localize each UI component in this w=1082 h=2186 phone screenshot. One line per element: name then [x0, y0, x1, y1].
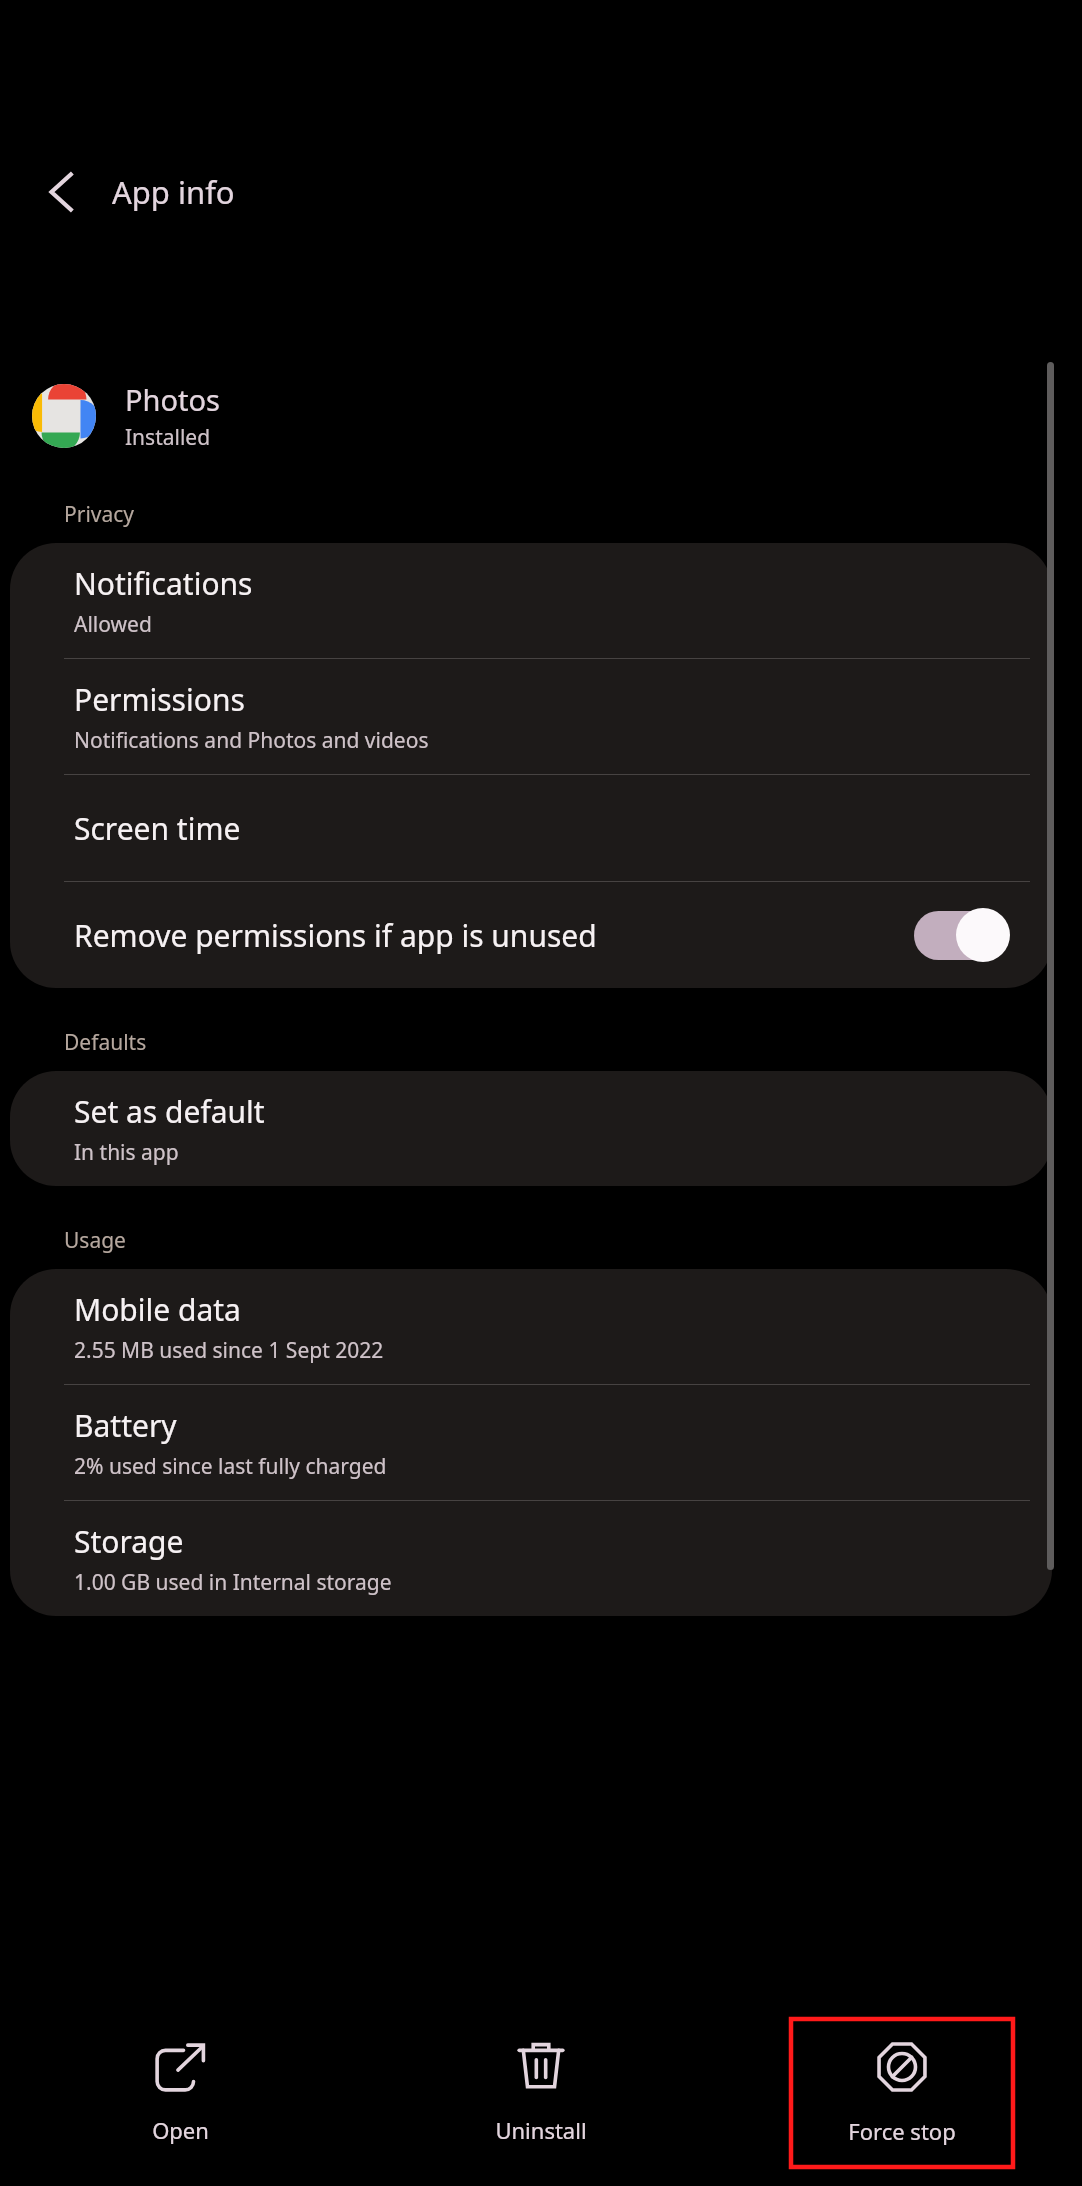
- staticText: Privacy: [64, 500, 135, 529]
- staticText: Mobile data: [74, 1289, 241, 1330]
- other: Open: [154, 2041, 206, 2093]
- staticText: Battery: [74, 1405, 177, 1446]
- button[interactable]: Set as default: [10, 1071, 1052, 1186]
- staticText: Force stop: [848, 2116, 956, 2146]
- staticText: Notifications: [74, 563, 253, 604]
- staticText: Open: [152, 2115, 209, 2145]
- staticText: Allowed: [74, 610, 152, 639]
- button[interactable]: Open: [69, 2019, 291, 2167]
- staticText: Set as default: [74, 1091, 265, 1132]
- button[interactable]: Remove permissions if app is unused: [10, 882, 1052, 988]
- button[interactable]: Battery: [10, 1385, 1052, 1500]
- staticText: In this app: [74, 1138, 179, 1167]
- staticText: Photos: [125, 380, 220, 419]
- staticText: Defaults: [64, 1028, 147, 1057]
- button[interactable]: Uninstall: [430, 2019, 652, 2167]
- staticText: Installed: [125, 423, 211, 452]
- other: Uninstall: [515, 2041, 567, 2093]
- button[interactable]: Back: [24, 154, 100, 230]
- other: Force stop: [875, 2040, 929, 2094]
- button[interactable]: Notifications: [10, 543, 1052, 658]
- staticText: Permissions: [74, 679, 245, 720]
- staticText: 1.00 GB used in Internal storage: [74, 1568, 392, 1597]
- staticText: Screen time: [74, 808, 241, 849]
- button[interactable]: Remove permissions toggle: [914, 908, 1010, 962]
- staticText: 2.55 MB used since 1 Sept 2022: [74, 1336, 384, 1365]
- staticText: 2% used since last fully charged: [74, 1452, 387, 1481]
- button[interactable]: Force stop: [791, 2019, 1013, 2167]
- staticText: Remove permissions if app is unused: [74, 915, 597, 956]
- staticText: Notifications and Photos and videos: [74, 726, 429, 755]
- button[interactable]: Permissions: [10, 659, 1052, 774]
- button[interactable]: Storage: [10, 1501, 1052, 1616]
- staticText: Uninstall: [495, 2115, 587, 2145]
- staticText: Usage: [64, 1226, 126, 1255]
- button[interactable]: Mobile data: [10, 1269, 1052, 1384]
- button[interactable]: Screen time: [10, 775, 1052, 881]
- staticText: App info: [112, 171, 235, 213]
- staticText: Storage: [74, 1521, 184, 1562]
- button[interactable]: Photos: [0, 368, 1082, 464]
